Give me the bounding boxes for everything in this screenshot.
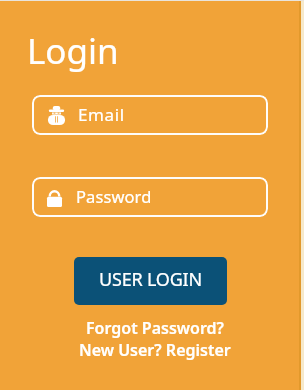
button[interactable]: Password (32, 177, 268, 217)
button[interactable]: USER LOGIN (74, 257, 227, 305)
button[interactable]: New User? Register (79, 339, 231, 361)
staticText: Password (76, 185, 152, 207)
button[interactable]: Forgot Password? (86, 317, 224, 339)
staticText: Login (27, 27, 119, 75)
staticText: USER LOGIN (99, 267, 202, 292)
button[interactable]: Email (32, 95, 268, 135)
staticText: Email (78, 103, 125, 126)
